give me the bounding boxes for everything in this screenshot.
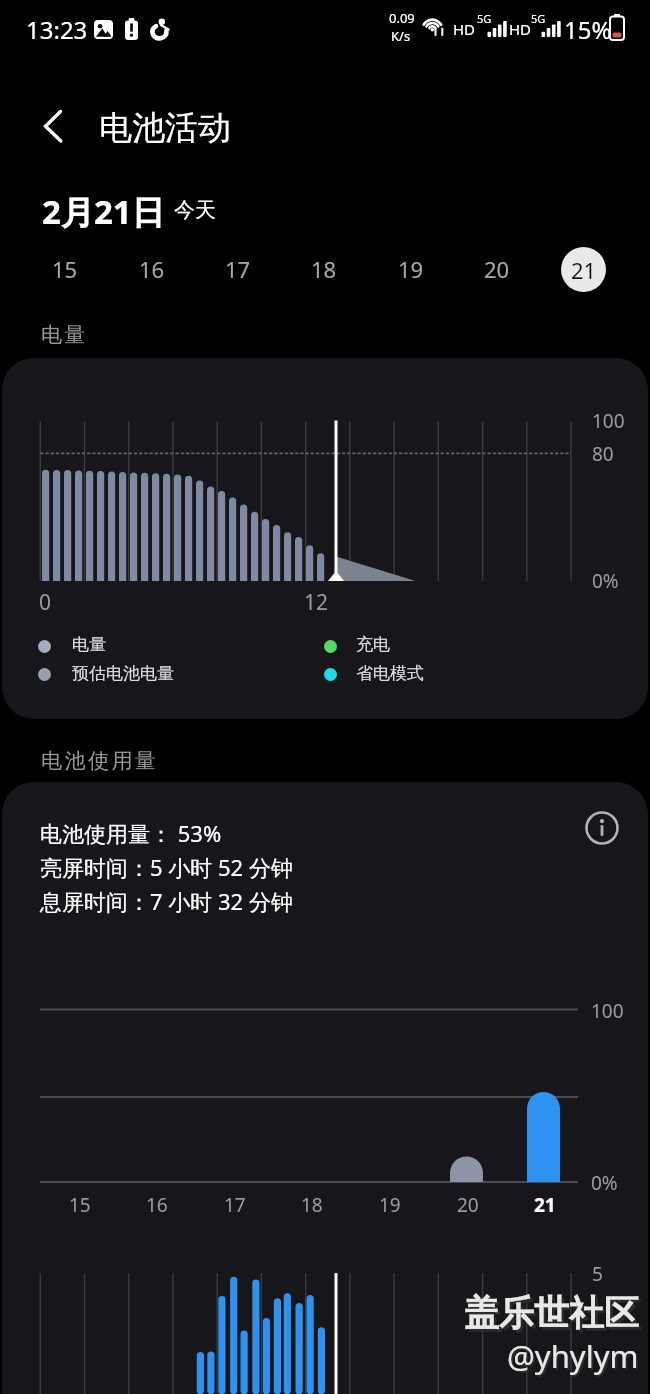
staticText: 21 — [534, 1192, 556, 1218]
staticText: 13:23 — [26, 13, 88, 46]
staticText: 预估电池电量 — [72, 663, 174, 684]
button[interactable]: 17 — [204, 235, 272, 303]
staticText: K/s — [391, 27, 411, 45]
staticText: 21 — [571, 255, 597, 285]
staticText: @yhylym — [507, 1335, 639, 1377]
staticText: 2月21日 — [42, 189, 165, 234]
button[interactable]: 20 — [463, 235, 531, 303]
button[interactable]: Back — [28, 100, 78, 150]
staticText: 电池活动 — [99, 107, 231, 149]
staticText: 省电模式 — [356, 663, 424, 684]
staticText: @yhylym — [509, 1337, 641, 1379]
staticText: 5G — [531, 11, 546, 26]
staticText: 息屏时间：7 小时 32 分钟 — [40, 886, 293, 916]
button[interactable]: 15 — [31, 235, 99, 303]
staticText: 80 — [592, 441, 614, 467]
staticText: 电量 — [41, 322, 89, 348]
staticText: 15% — [564, 13, 612, 46]
button[interactable] — [2, 358, 648, 719]
staticText: 15 — [52, 254, 78, 284]
button[interactable]: 21 — [549, 235, 617, 303]
staticText: 17 — [225, 254, 251, 284]
staticText: 16 — [139, 254, 165, 284]
staticText: 0% — [591, 1170, 618, 1196]
staticText: 20 — [484, 254, 510, 284]
staticText: 0 — [39, 588, 52, 617]
button[interactable]: 18 — [290, 235, 358, 303]
staticText: 电量 — [72, 634, 106, 655]
staticText: 18 — [311, 254, 337, 284]
staticText: 0.09 — [389, 9, 415, 27]
button[interactable]: Info — [585, 811, 619, 845]
staticText: HD — [509, 19, 532, 39]
staticText: 5G — [477, 11, 492, 26]
button[interactable]: 16 — [118, 235, 186, 303]
staticText: 16 — [146, 1192, 168, 1218]
staticText: 亮屏时间：5 小时 52 分钟 — [40, 852, 293, 882]
staticText: 100 — [591, 998, 624, 1024]
staticText: 20 — [457, 1192, 479, 1218]
staticText: 15 — [69, 1192, 91, 1218]
staticText: HD — [453, 19, 476, 39]
staticText: 18 — [301, 1192, 323, 1218]
staticText: 电池使用量： 53% — [40, 818, 222, 848]
staticText: 100 — [592, 408, 625, 434]
staticText: 12 — [304, 588, 329, 617]
staticText: 盖乐世社区 — [464, 1291, 639, 1335]
staticText: 充电 — [356, 634, 390, 655]
staticText: 19 — [379, 1192, 401, 1218]
staticText: 0% — [592, 568, 619, 594]
button[interactable]: 19 — [377, 235, 445, 303]
staticText: 盖乐世社区 — [467, 1294, 642, 1338]
staticText: 今天 — [174, 197, 216, 223]
staticText: 电池使用量 — [41, 748, 159, 774]
staticText: 19 — [398, 254, 424, 284]
staticText: 5 — [592, 1261, 603, 1287]
staticText: 17 — [224, 1192, 246, 1218]
